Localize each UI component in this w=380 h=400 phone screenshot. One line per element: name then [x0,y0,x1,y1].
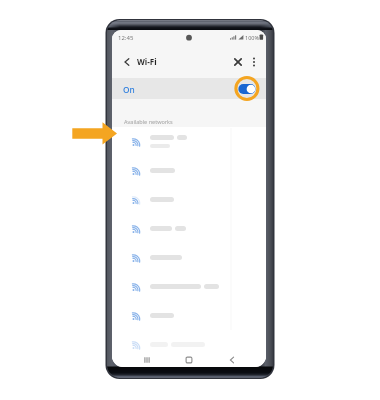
button[interactable] [112,272,266,301]
button[interactable]: Wi-Fi on [236,80,258,98]
button[interactable] [112,214,266,243]
button[interactable]: More options [247,55,261,69]
button[interactable] [112,243,266,272]
button[interactable] [112,127,266,156]
button[interactable]: Back [226,354,238,366]
button[interactable]: On [112,78,266,99]
staticText: On [123,84,135,95]
button[interactable]: Scan for networks [231,55,245,69]
button[interactable] [112,301,266,330]
staticText: Available networks [124,118,173,125]
button[interactable]: Recents [141,354,153,366]
staticText: 12:45 [118,34,134,42]
button[interactable] [112,185,266,214]
button[interactable]: Home [183,354,195,366]
button[interactable]: Back [120,55,134,69]
button[interactable] [112,156,266,185]
button[interactable] [112,330,266,359]
staticText: 100% [245,34,260,41]
staticText: Wi-Fi [137,56,157,67]
